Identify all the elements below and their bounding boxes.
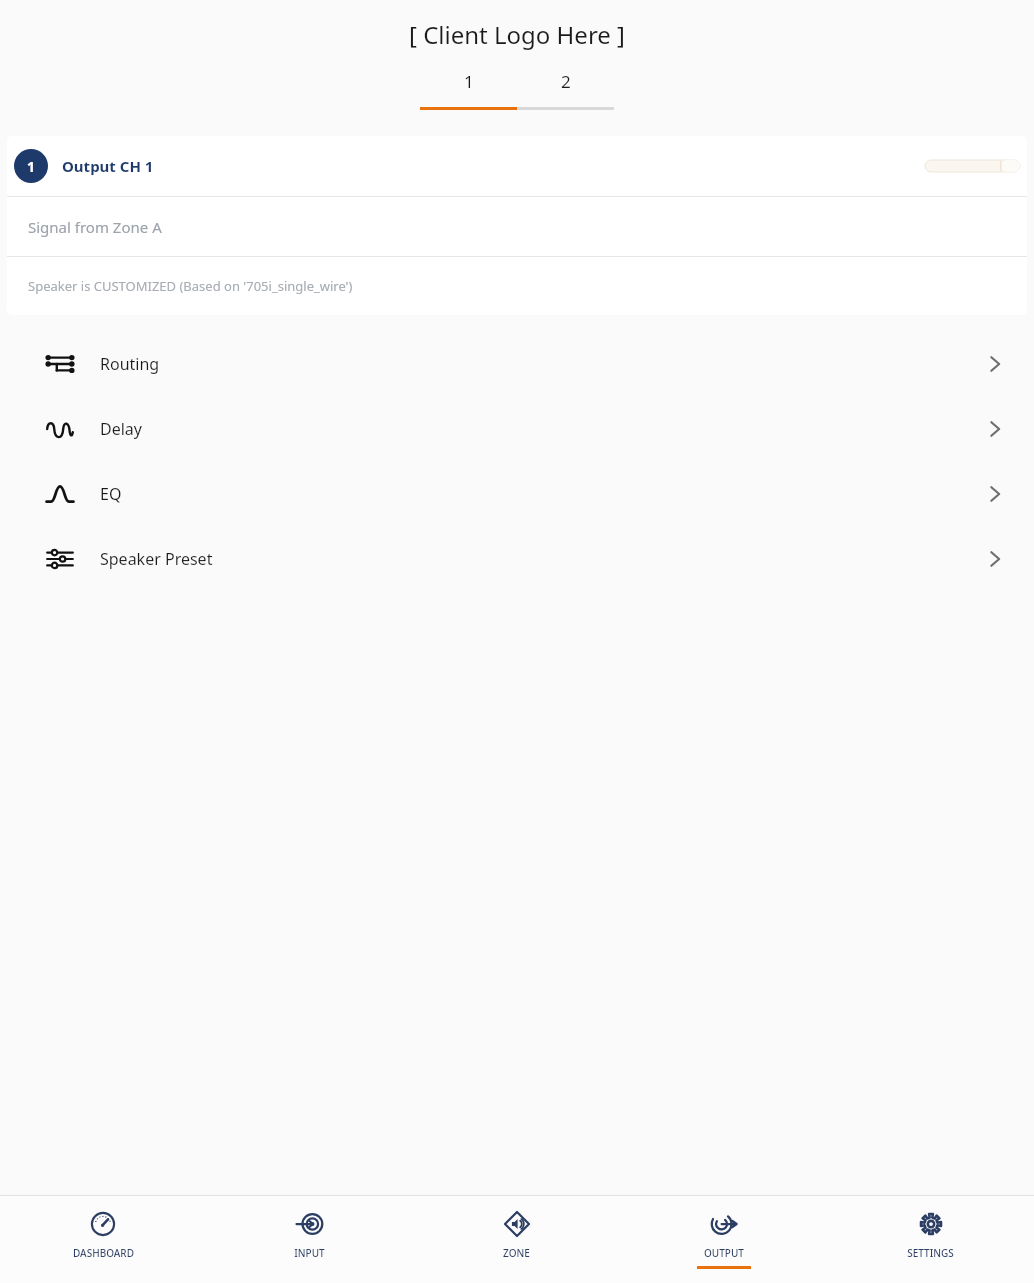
staticText: OUTPUT bbox=[704, 1246, 744, 1260]
button[interactable]: Speaker is CUSTOMIZED (Based on '705i_si… bbox=[7, 257, 1027, 315]
button[interactable]: INPUT bbox=[206, 1196, 413, 1266]
button[interactable]: Delay bbox=[0, 396, 1034, 461]
staticText: DASHBOARD bbox=[73, 1246, 134, 1260]
staticText: ZONE bbox=[503, 1246, 530, 1260]
button[interactable]: Speaker Preset bbox=[0, 526, 1034, 591]
button[interactable]: Routing bbox=[0, 331, 1034, 396]
staticText: Delay bbox=[100, 418, 142, 440]
button[interactable]: DASHBOARD bbox=[0, 1196, 206, 1266]
staticText: Signal from Zone A bbox=[28, 217, 162, 237]
staticText: [ Client Logo Here ] bbox=[409, 18, 625, 51]
button[interactable]: Signal from Zone A bbox=[7, 197, 1027, 256]
button[interactable]: ZONE bbox=[413, 1196, 620, 1266]
button[interactable]: EQ bbox=[0, 461, 1034, 526]
button[interactable]: SETTINGS bbox=[827, 1196, 1034, 1266]
staticText: EQ bbox=[100, 483, 122, 505]
staticText: Speaker Preset bbox=[100, 548, 213, 570]
staticText: 1 bbox=[464, 70, 474, 93]
button[interactable]: OUTPUT bbox=[620, 1196, 827, 1269]
button[interactable]: Output level bbox=[925, 160, 1020, 172]
staticText: 2 bbox=[561, 70, 571, 93]
staticText: 1 bbox=[27, 157, 36, 176]
button[interactable]: 2 bbox=[517, 65, 614, 97]
staticText: Output CH 1 bbox=[62, 156, 154, 176]
button[interactable]: 1 bbox=[420, 65, 517, 97]
button[interactable]: 1 bbox=[7, 136, 1027, 196]
staticText: SETTINGS bbox=[907, 1246, 954, 1260]
staticText: Speaker is CUSTOMIZED (Based on '705i_si… bbox=[28, 277, 353, 295]
staticText: INPUT bbox=[294, 1246, 325, 1260]
staticText: Routing bbox=[100, 353, 160, 375]
